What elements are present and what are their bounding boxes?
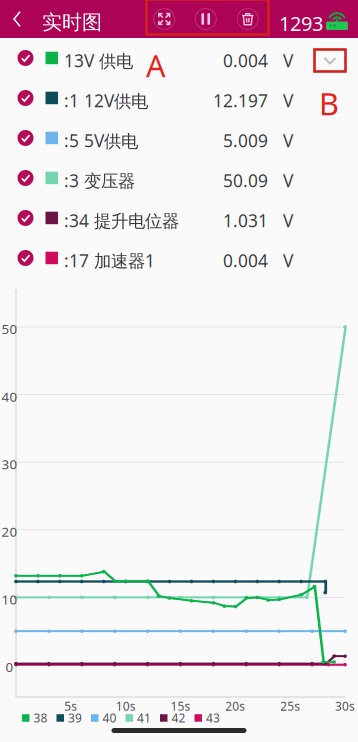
- staticText: V: [283, 49, 293, 72]
- staticText: V: [283, 129, 293, 152]
- staticText: :5 5V供电: [64, 129, 138, 152]
- button[interactable]: :5 5V供电: [0, 118, 358, 158]
- staticText: 20: [1, 523, 17, 540]
- staticText: 43: [206, 710, 220, 726]
- staticText: 39: [68, 710, 82, 726]
- button[interactable]: :3 变压器: [0, 158, 358, 198]
- button[interactable]: Pause: [185, 0, 226, 38]
- staticText: :1 12V供电: [64, 89, 148, 112]
- staticText: 38: [33, 710, 47, 726]
- button[interactable]: Delete: [227, 0, 268, 38]
- staticText: V: [283, 209, 293, 232]
- staticText: 0.004: [223, 249, 268, 272]
- button[interactable]: 13V 供电: [0, 38, 358, 78]
- staticText: 15s: [170, 698, 190, 714]
- button[interactable]: :34 提升电位器: [0, 198, 358, 238]
- button[interactable]: Back: [0, 0, 34, 38]
- staticText: :17 加速器1: [64, 249, 155, 272]
- staticText: 12.197: [213, 89, 268, 112]
- staticText: A: [146, 45, 166, 86]
- staticText: 40: [102, 710, 116, 726]
- staticText: V: [283, 249, 293, 272]
- staticText: 5s: [64, 698, 77, 714]
- staticText: :3 变压器: [64, 169, 135, 192]
- staticText: V: [283, 169, 293, 192]
- button[interactable]: Connection: [322, 0, 352, 38]
- button[interactable]: :17 加速器1: [0, 238, 358, 278]
- staticText: 10s: [116, 698, 136, 714]
- staticText: 0.004: [223, 49, 268, 72]
- staticText: :34 提升电位器: [64, 209, 179, 232]
- staticText: 30: [1, 455, 17, 473]
- staticText: V: [283, 89, 293, 112]
- button[interactable]: Collapse: [313, 48, 347, 73]
- staticText: 40: [1, 388, 17, 405]
- staticText: 41: [137, 710, 151, 726]
- staticText: 1293: [279, 10, 323, 37]
- staticText: 13V 供电: [64, 49, 133, 72]
- button[interactable]: Fullscreen: [143, 0, 185, 38]
- staticText: 10: [1, 590, 17, 608]
- staticText: 0: [5, 658, 13, 676]
- staticText: 1.031: [223, 209, 268, 232]
- staticText: 30s: [335, 698, 355, 714]
- staticText: 50: [1, 320, 17, 338]
- staticText: 5.009: [223, 129, 268, 152]
- staticText: 实时图: [42, 10, 102, 35]
- button[interactable]: :1 12V供电: [0, 78, 358, 118]
- staticText: 50.09: [223, 169, 268, 192]
- staticText: 25s: [280, 698, 300, 714]
- staticText: 20s: [225, 698, 245, 714]
- staticText: B: [319, 83, 339, 124]
- staticText: 42: [171, 710, 185, 726]
